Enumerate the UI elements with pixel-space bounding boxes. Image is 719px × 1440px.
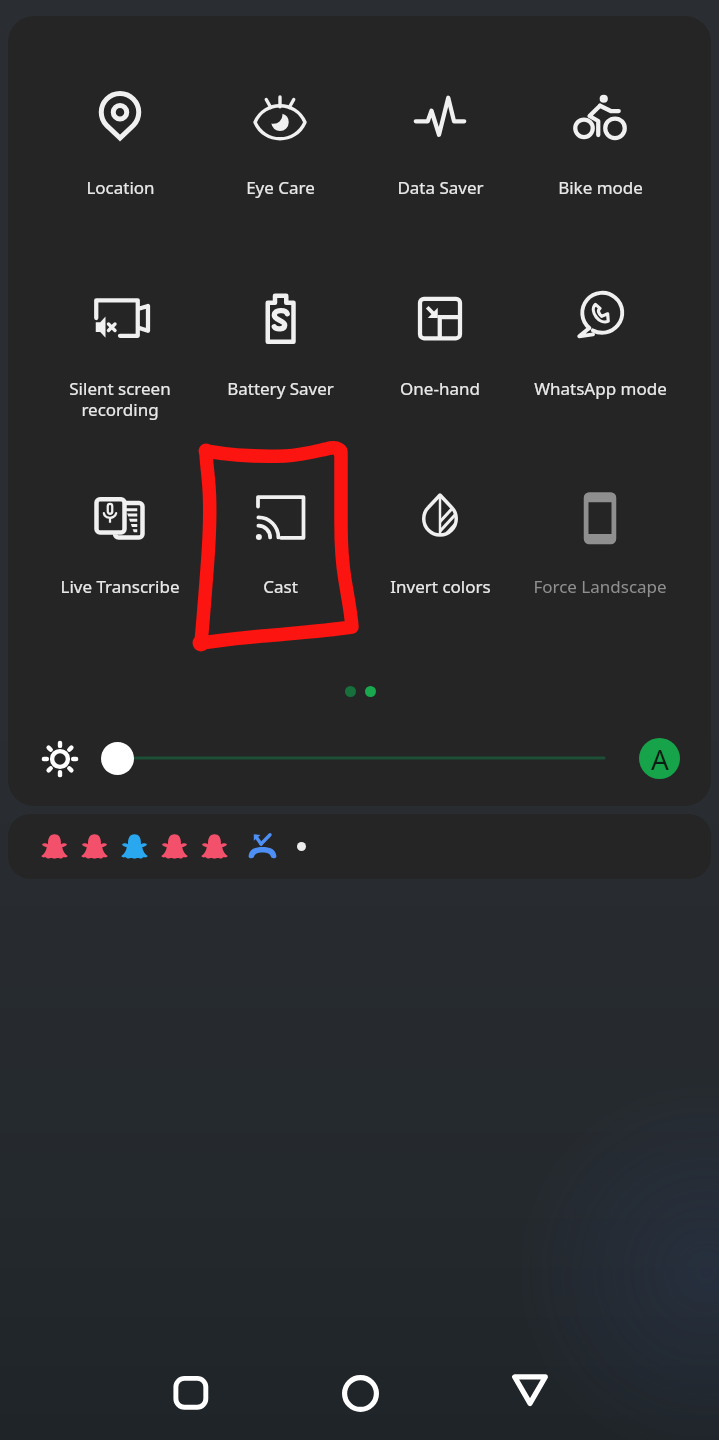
button[interactable]: Force Landscape <box>520 477 680 622</box>
button[interactable]: Battery Saver <box>200 279 360 424</box>
staticText: WhatsApp mode <box>534 377 667 400</box>
staticText: Data Saver <box>397 176 484 199</box>
staticText: Bike mode <box>558 176 643 199</box>
button[interactable]: Brightness <box>34 733 86 785</box>
staticText: Cast <box>263 575 298 598</box>
button[interactable]: Recent apps <box>164 1367 216 1419</box>
staticText: Silent screen recording <box>69 377 171 421</box>
staticText: Eye Care <box>246 176 315 199</box>
staticText: A <box>651 740 669 778</box>
button[interactable]: Auto brightness <box>639 738 680 779</box>
staticText: Battery Saver <box>227 377 334 400</box>
button[interactable]: Brightness slider <box>92 733 142 783</box>
staticText: Location <box>86 176 155 199</box>
button[interactable]: WhatsApp mode <box>520 279 680 424</box>
button[interactable]: Silent screen recording <box>40 279 200 424</box>
button[interactable]: Eye Care <box>200 78 360 223</box>
button[interactable]: Cast <box>200 477 360 622</box>
button[interactable]: Back <box>504 1363 556 1415</box>
staticText: Invert colors <box>390 575 491 598</box>
staticText: Live Transcribe <box>60 575 180 598</box>
button[interactable]: Location <box>40 78 200 223</box>
button[interactable]: Data Saver <box>360 78 520 223</box>
staticText: One-hand <box>400 377 480 400</box>
button[interactable] <box>8 814 711 879</box>
staticText: Force Landscape <box>533 575 667 598</box>
button[interactable]: One-hand <box>360 279 520 424</box>
button[interactable]: Invert colors <box>360 477 520 622</box>
button[interactable]: Bike mode <box>520 78 680 223</box>
button[interactable]: Home <box>334 1367 386 1419</box>
button[interactable]: Live Transcribe <box>40 477 200 622</box>
